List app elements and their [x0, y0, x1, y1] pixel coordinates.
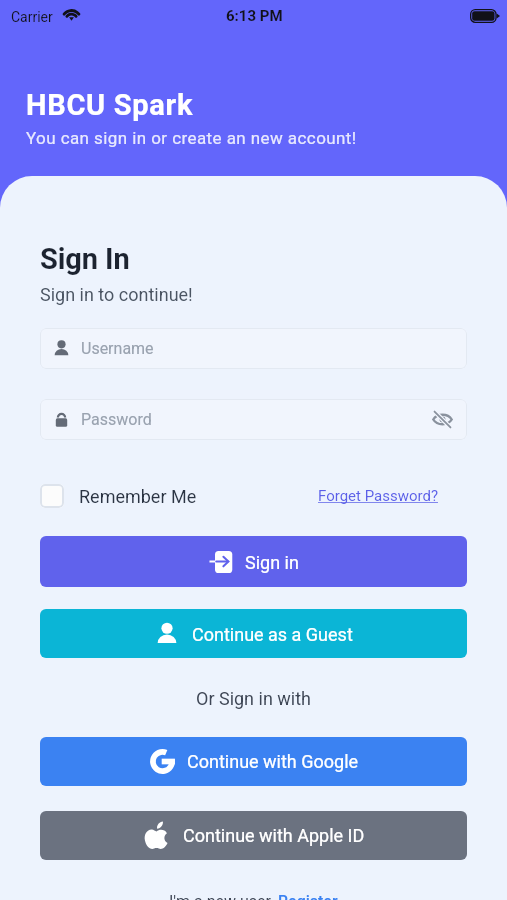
button[interactable]: Continue with Apple ID [40, 811, 467, 860]
staticText: Username [81, 339, 154, 358]
staticText: Register [278, 892, 338, 900]
button[interactable]: Continue as a Guest [40, 609, 467, 658]
button[interactable]: Password [40, 399, 467, 440]
staticText: You can sign in or create an new account… [26, 128, 357, 148]
button[interactable]: Continue with Google [40, 737, 467, 786]
button[interactable]: Username [40, 328, 467, 369]
staticText: Sign in [245, 552, 299, 573]
staticText: Continue with Google [187, 751, 359, 772]
staticText: 6:13 PM [226, 7, 283, 25]
staticText: Sign in to continue! [40, 284, 193, 305]
staticText: Continue with Apple ID [183, 825, 365, 846]
staticText: Sign In [40, 242, 130, 276]
button[interactable]: I'm a new user, [169, 892, 338, 900]
staticText: Password [81, 410, 152, 429]
button[interactable]: Show password [432, 409, 453, 430]
button[interactable]: Remember Me [40, 484, 197, 508]
button[interactable]: Sign in [40, 536, 467, 587]
staticText: Continue as a Guest [192, 624, 353, 645]
staticText: I'm a new user, [169, 892, 278, 900]
staticText: Or Sign in with [196, 688, 312, 709]
staticText: Remember Me [79, 486, 197, 507]
button[interactable]: Forget Password? [318, 487, 438, 505]
staticText: Carrier [11, 9, 53, 25]
staticText: HBCU Spark [26, 88, 194, 122]
